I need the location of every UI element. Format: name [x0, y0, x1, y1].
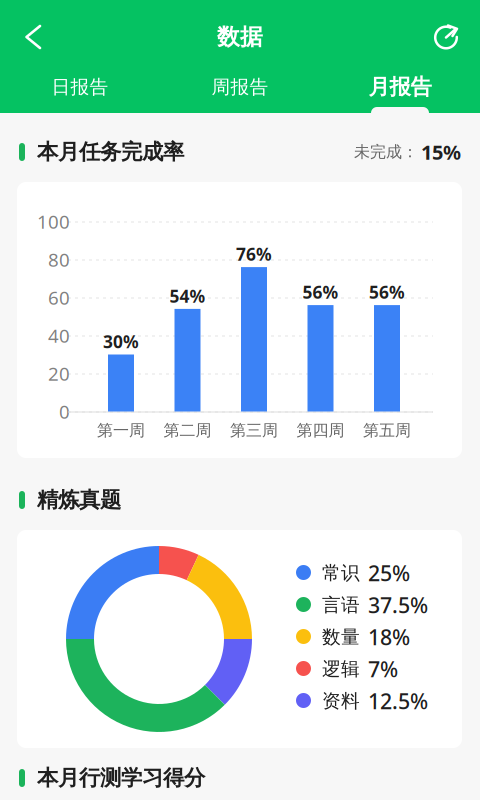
- staticText: 言语: [322, 593, 360, 616]
- staticText: 60: [48, 285, 70, 310]
- staticText: 第二周: [163, 421, 211, 440]
- staticText: 第三周: [230, 421, 278, 440]
- staticText: 20: [48, 361, 70, 386]
- staticText: 80: [48, 247, 70, 272]
- staticText: 56%: [369, 281, 405, 304]
- staticText: 精炼真题: [37, 487, 121, 513]
- staticText: 第一周: [97, 421, 145, 440]
- staticText: 30%: [103, 330, 139, 353]
- staticText: 本月行测学习得分: [37, 765, 205, 791]
- staticText: 未完成：: [354, 142, 418, 162]
- staticText: 逻辑: [322, 657, 360, 680]
- staticText: 月报告: [368, 74, 431, 100]
- staticText: 周报告: [211, 75, 268, 98]
- staticText: 25%: [368, 559, 410, 587]
- button[interactable]: Back: [6, 9, 60, 65]
- staticText: 本月任务完成率: [37, 139, 184, 165]
- staticText: 54%: [169, 284, 205, 307]
- button[interactable]: Refresh: [420, 9, 474, 65]
- staticText: 0: [59, 399, 70, 424]
- staticText: 100: [37, 209, 70, 234]
- staticText: 37.5%: [368, 591, 428, 619]
- staticText: 数量: [322, 625, 360, 648]
- staticText: 76%: [236, 243, 272, 266]
- staticText: 56%: [302, 281, 338, 304]
- staticText: 12.5%: [368, 687, 428, 715]
- staticText: 资料: [322, 689, 360, 712]
- staticText: 第五周: [363, 421, 411, 440]
- button[interactable]: 日报告: [20, 65, 140, 113]
- staticText: 第四周: [296, 421, 344, 440]
- staticText: 数据: [217, 23, 263, 51]
- staticText: 18%: [368, 623, 410, 651]
- staticText: 15%: [421, 139, 461, 165]
- staticText: 7%: [368, 655, 398, 683]
- staticText: 日报告: [51, 75, 108, 98]
- staticText: 40: [48, 323, 70, 348]
- staticText: 常识: [322, 561, 360, 584]
- button[interactable]: 周报告: [180, 65, 300, 113]
- button[interactable]: 月报告: [340, 65, 460, 113]
